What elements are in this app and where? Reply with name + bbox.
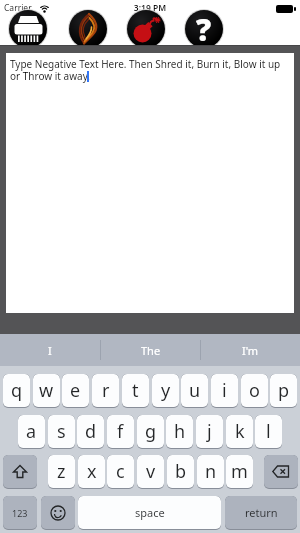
staticText: j [207,419,212,444]
staticText: n [205,459,217,484]
staticText: c [116,459,125,484]
staticText: ? [196,10,212,47]
staticText: l [266,419,271,444]
staticText: I'm [242,343,259,358]
staticText: u [189,378,201,403]
staticText: k [235,419,245,444]
staticText: q [11,378,23,403]
staticText: w [39,378,54,403]
staticText: s [57,419,66,444]
staticText: 3:19 PM [0,2,300,14]
staticText: a [26,419,37,444]
staticText: I [48,343,52,358]
staticText: b [175,459,187,484]
staticText: Type Negative Text Here. Then Shred it, … [10,57,281,83]
staticText: g [145,419,157,444]
staticText: m [231,459,248,484]
staticText: return [245,505,278,520]
staticText: r [102,378,110,403]
staticText: f [117,419,124,444]
staticText: e [70,378,81,403]
staticText: o [249,378,260,403]
staticText: h [174,419,186,444]
staticText: space [135,505,165,520]
staticText: d [85,419,97,444]
staticText: Carrier [4,2,32,14]
staticText: x [87,459,97,484]
staticText: i [222,378,227,403]
staticText: z [57,459,66,484]
staticText: 123 [12,507,28,519]
staticText: y [161,378,171,403]
staticText: p [278,378,290,403]
staticText: The [141,343,161,358]
staticText: t [132,378,139,403]
staticText: v [146,459,156,484]
